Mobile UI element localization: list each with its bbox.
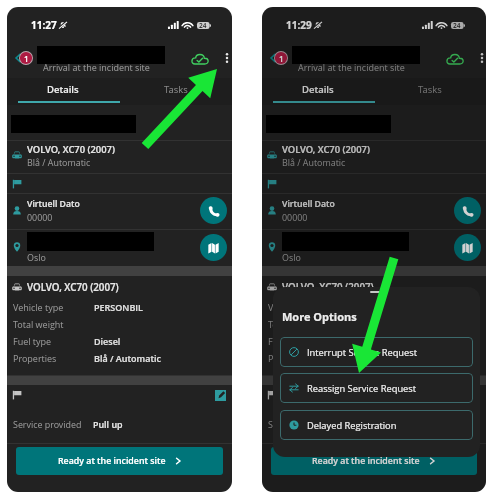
staticText: Blå / Automatic — [94, 352, 161, 364]
button[interactable]: Edit — [469, 390, 480, 401]
button[interactable]: Details — [7, 78, 119, 105]
staticText: Service provided — [13, 418, 82, 430]
staticText: Properties — [268, 352, 312, 364]
button[interactable]: Tasks — [119, 78, 232, 105]
staticText: Tasks — [418, 83, 442, 96]
staticText: Ready at the incident site — [312, 455, 420, 467]
staticText: Virtuell Dato — [282, 198, 335, 210]
button[interactable]: VOLVO, XC70 (2007) — [7, 141, 232, 173]
button[interactable]: Synced — [446, 52, 464, 66]
staticText: 24 — [199, 21, 207, 30]
staticText: Vehicle type — [13, 301, 64, 313]
staticText: Reassign Service Request — [307, 382, 417, 395]
staticText: Oslo — [27, 251, 46, 263]
staticText: VOLVO, XC70 (2007) — [282, 281, 374, 294]
staticText: Properties — [13, 352, 57, 364]
staticText: Diesel — [349, 335, 376, 347]
staticText: Ready at the incident site — [58, 455, 166, 467]
staticText: Delayed Registration — [307, 419, 397, 432]
staticText: More Options — [282, 309, 357, 324]
button[interactable]: Call — [200, 197, 227, 224]
button[interactable]: VOLVO, XC70 (2007) — [262, 141, 486, 173]
staticText: Details — [302, 83, 334, 96]
button[interactable]: Interrupt Service Request — [280, 337, 473, 367]
staticText: Total weight — [268, 318, 319, 330]
staticText: Fuel type — [13, 335, 52, 347]
staticText: Diesel — [94, 335, 121, 347]
staticText: 1 — [24, 53, 29, 64]
staticText: 11:27 — [31, 18, 57, 32]
button[interactable]: Virtuell Dato — [7, 194, 232, 229]
button[interactable]: More options — [476, 52, 486, 64]
staticText: Service provided — [268, 418, 337, 430]
button[interactable]: Oslo — [7, 230, 232, 266]
staticText: PERSONBIL — [94, 301, 143, 313]
staticText: Interrupt Service Request — [307, 346, 417, 359]
staticText: 00000 — [282, 211, 308, 223]
staticText: Blå / Automatic — [282, 156, 346, 168]
staticText: Total weight — [13, 318, 64, 330]
staticText: VOLVO, XC70 (2007) — [27, 281, 119, 294]
staticText: 00000 — [27, 211, 53, 223]
staticText: Blå / Automatic — [27, 156, 91, 168]
button[interactable]: Tasks — [374, 78, 486, 105]
button[interactable]: Map — [200, 234, 227, 261]
staticText: Blå / Automatic — [349, 352, 416, 364]
button[interactable]: Ready at the incident site — [271, 447, 477, 475]
staticText: Arrival at the incident site — [43, 61, 150, 73]
staticText: 1 — [279, 53, 284, 64]
button[interactable] — [7, 174, 232, 193]
staticText: Vehicle type — [268, 301, 319, 313]
staticText: VOLVO, XC70 (2007) — [27, 143, 115, 156]
staticText: Arrival at the incident site — [298, 61, 405, 73]
button[interactable]: Details — [262, 78, 374, 105]
staticText: Virtuell Dato — [27, 198, 80, 210]
button[interactable]: Back — [12, 52, 24, 64]
button[interactable]: Oslo — [262, 230, 486, 266]
staticText: Pull up — [93, 418, 123, 430]
button[interactable]: Map — [454, 234, 481, 261]
button[interactable]: More options — [221, 52, 232, 64]
staticText: VOLVO, XC70 (2007) — [282, 143, 370, 156]
button[interactable]: Reassign Service Request — [280, 373, 473, 403]
button[interactable]: Call — [454, 197, 481, 224]
button[interactable]: Edit — [215, 390, 226, 401]
button[interactable] — [262, 174, 486, 193]
button[interactable]: Ready at the incident site — [16, 447, 223, 475]
staticText: Oslo — [282, 251, 301, 263]
button[interactable]: Synced — [191, 52, 209, 66]
button[interactable]: Delayed Registration — [280, 410, 473, 440]
staticText: PERSONBIL — [349, 301, 398, 313]
button[interactable]: Back — [267, 52, 279, 64]
staticText: 11:29 — [286, 18, 312, 32]
staticText: Details — [47, 83, 79, 96]
staticText: Fuel type — [268, 335, 307, 347]
staticText: Tasks — [164, 83, 188, 96]
staticText: 24 — [453, 21, 461, 30]
button[interactable]: Virtuell Dato — [262, 194, 486, 229]
staticText: Pull up — [348, 418, 378, 430]
